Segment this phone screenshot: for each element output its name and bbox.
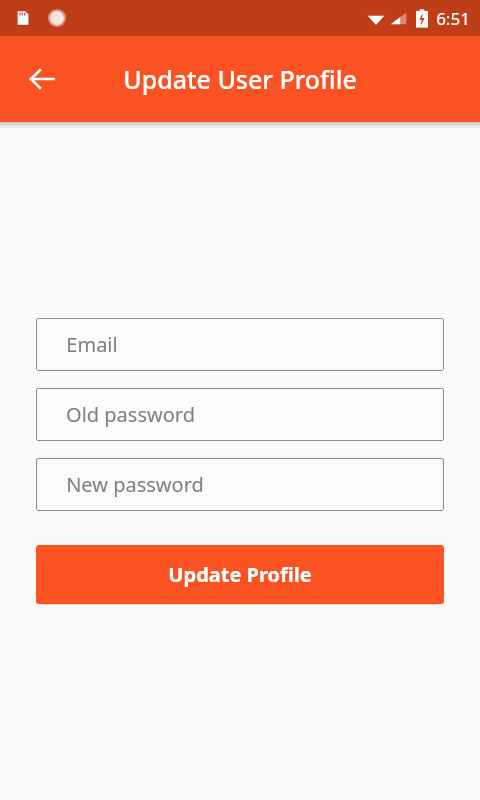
staticText: Old password — [66, 401, 195, 428]
button[interactable]: New password — [36, 458, 444, 511]
staticText: New password — [66, 471, 204, 498]
staticText: 6:51 — [436, 7, 470, 30]
button[interactable]: Email — [36, 318, 444, 371]
staticText: Email — [66, 331, 118, 358]
button[interactable]: Update Profile — [36, 545, 444, 604]
button[interactable]: Back — [18, 55, 66, 103]
staticText: Update Profile — [168, 561, 312, 588]
staticText: Update User Profile — [123, 62, 357, 96]
button[interactable]: Old password — [36, 388, 444, 441]
